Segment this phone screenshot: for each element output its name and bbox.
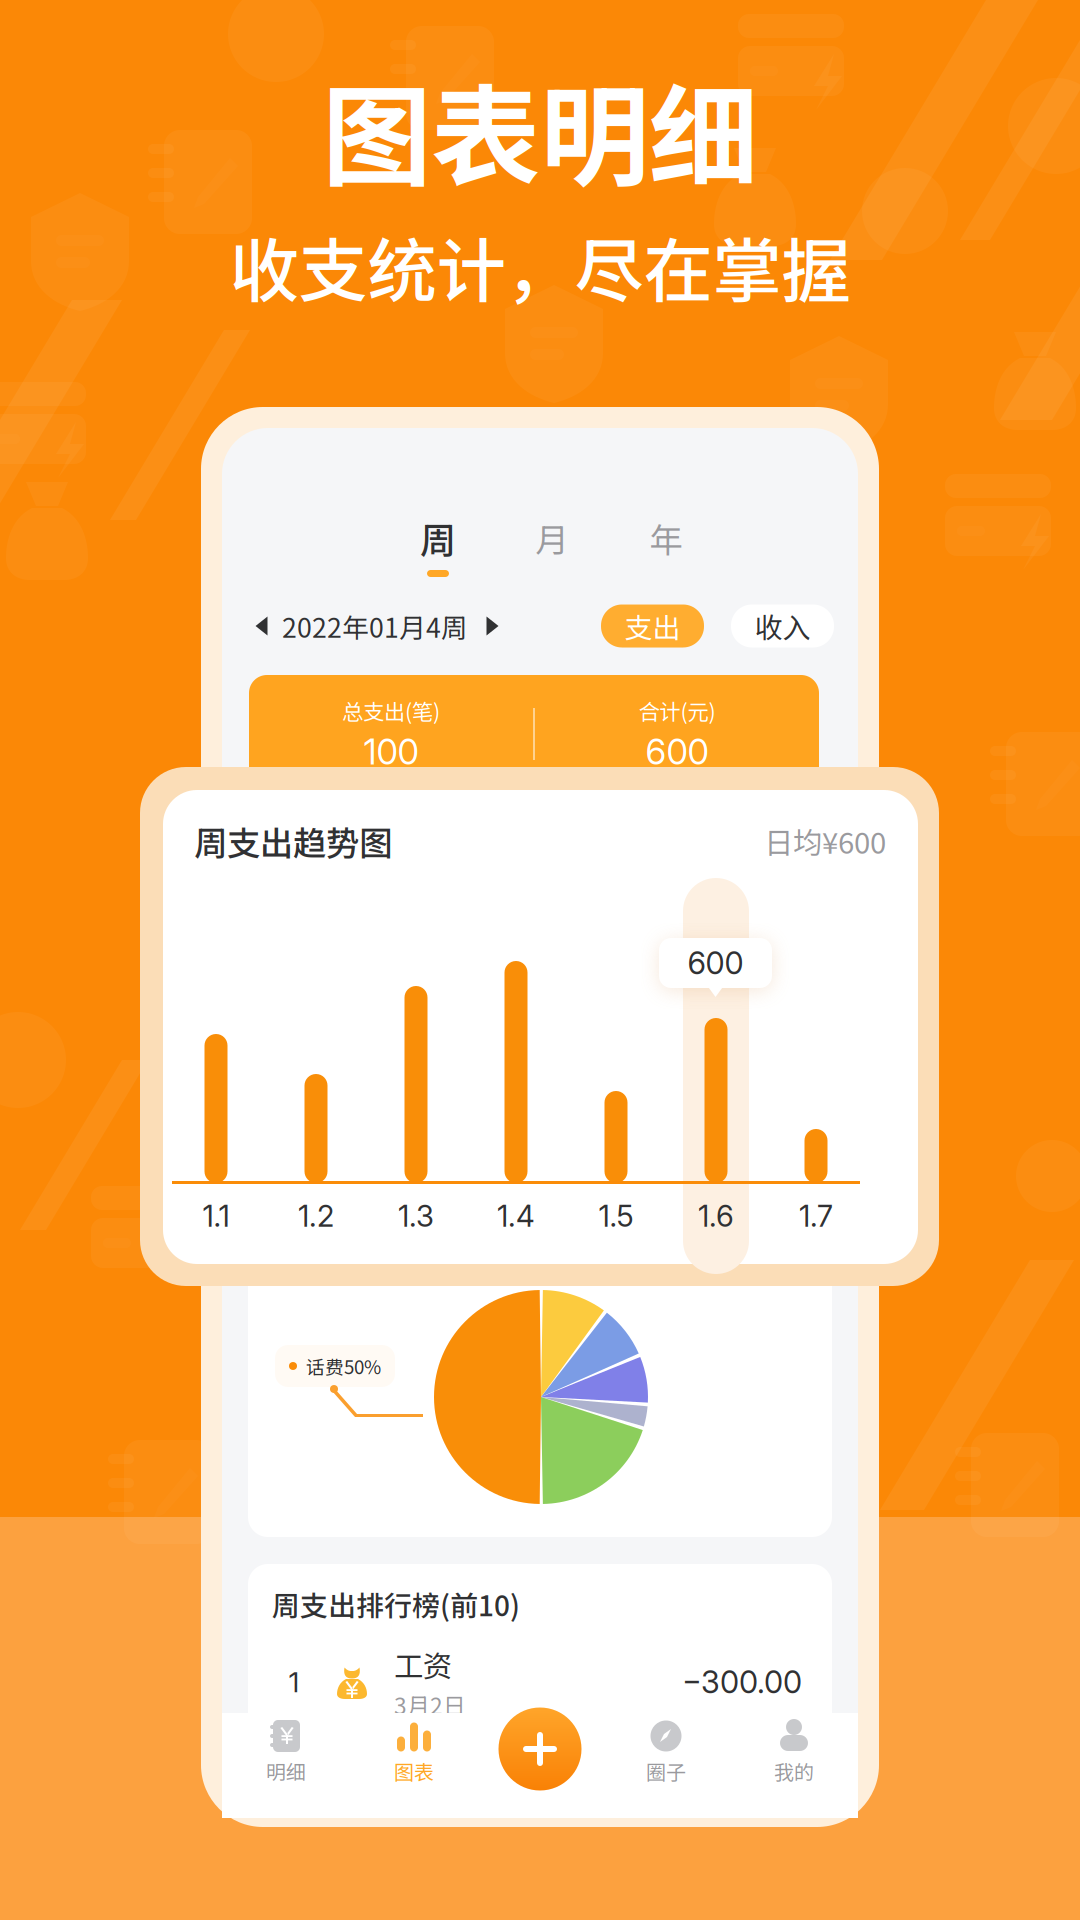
button[interactable]: Next period bbox=[472, 604, 512, 648]
staticText: 1.2 bbox=[298, 1198, 334, 1234]
button[interactable]: 收入 bbox=[731, 604, 834, 647]
staticText: 1 bbox=[288, 1665, 299, 1699]
staticText: −300.00 bbox=[682, 1663, 802, 1700]
button[interactable]: Add record bbox=[490, 1699, 590, 1799]
staticText: 周支出排行榜(前10) bbox=[272, 1584, 520, 1624]
staticText: 工资 bbox=[394, 1643, 452, 1685]
staticText: 日均¥600 bbox=[764, 820, 886, 862]
button[interactable]: 月 bbox=[495, 515, 609, 607]
staticText: 我的 bbox=[774, 1756, 814, 1785]
staticText: 年 bbox=[649, 514, 682, 562]
staticText: 周 bbox=[420, 512, 456, 564]
staticText: 1.6 bbox=[698, 1198, 734, 1234]
staticText: 图表 bbox=[394, 1756, 434, 1785]
staticText: 月 bbox=[535, 514, 568, 562]
staticText: 合计(元) bbox=[638, 695, 715, 726]
staticText: 总支出(笔) bbox=[342, 695, 440, 726]
staticText: 支出 bbox=[624, 606, 680, 646]
button[interactable]: Previous period bbox=[246, 604, 278, 648]
staticText: 3月2日 bbox=[394, 1688, 466, 1721]
staticText: 2022年01月4周 bbox=[282, 607, 468, 645]
staticText: 收支统计，尽在掌握 bbox=[229, 216, 850, 316]
staticText: 600 bbox=[687, 944, 743, 981]
button[interactable]: 圈子 bbox=[602, 1713, 730, 1818]
staticText: 1.4 bbox=[497, 1198, 535, 1234]
staticText: 1.1 bbox=[202, 1198, 229, 1234]
button[interactable]: 周 bbox=[381, 515, 495, 607]
staticText: 周支出趋势图 bbox=[194, 817, 392, 865]
staticText: 话费50% bbox=[306, 1352, 381, 1379]
staticText: 明细 bbox=[266, 1756, 306, 1785]
button[interactable]: 我的 bbox=[730, 1713, 858, 1818]
button[interactable]: 年 bbox=[609, 515, 723, 607]
button[interactable]: 支出 bbox=[601, 604, 704, 647]
button[interactable]: 图表 bbox=[350, 1713, 478, 1818]
staticText: 1.3 bbox=[398, 1198, 434, 1234]
staticText: 100 bbox=[363, 731, 418, 773]
staticText: 1.5 bbox=[598, 1198, 633, 1234]
button[interactable]: 明细 bbox=[222, 1713, 350, 1818]
staticText: 图表明细 bbox=[322, 50, 758, 208]
staticText: 圈子 bbox=[646, 1756, 686, 1785]
staticText: 600 bbox=[645, 731, 708, 773]
staticText: 收入 bbox=[754, 606, 810, 646]
staticText: 1.7 bbox=[799, 1198, 833, 1234]
